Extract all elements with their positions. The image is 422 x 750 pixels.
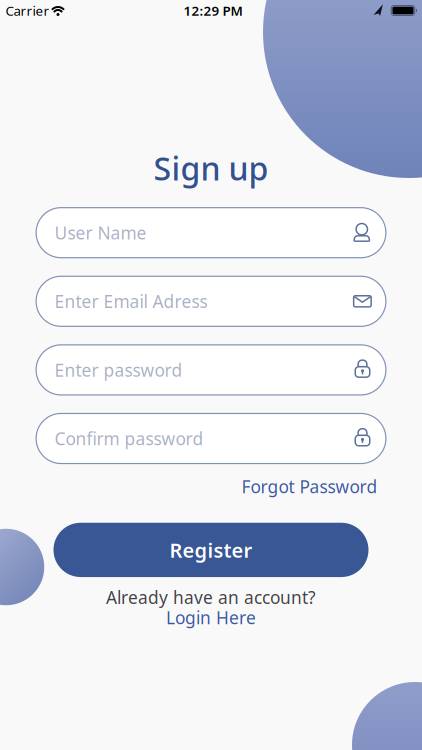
- button[interactable]: Login Here: [166, 606, 256, 629]
- staticText: Already have an account?: [106, 586, 316, 609]
- staticText: Enter password: [54, 358, 182, 381]
- staticText: Login Here: [166, 606, 256, 629]
- staticText: Confirm password: [54, 427, 203, 450]
- button[interactable]: Forgot Password: [241, 475, 377, 498]
- staticText: User Name: [54, 221, 146, 244]
- button[interactable]: Enter Email Adress: [35, 276, 386, 327]
- staticText: Carrier: [5, 2, 49, 19]
- staticText: Register: [169, 537, 252, 563]
- staticText: Sign up: [153, 147, 268, 189]
- button[interactable]: User Name: [35, 207, 386, 258]
- staticText: 12:29 PM: [183, 2, 242, 19]
- staticText: Enter Email Adress: [54, 290, 207, 313]
- button[interactable]: Register: [53, 523, 368, 577]
- button[interactable]: Confirm password: [35, 413, 386, 464]
- button[interactable]: Enter password: [35, 344, 386, 395]
- staticText: Forgot Password: [241, 475, 377, 498]
